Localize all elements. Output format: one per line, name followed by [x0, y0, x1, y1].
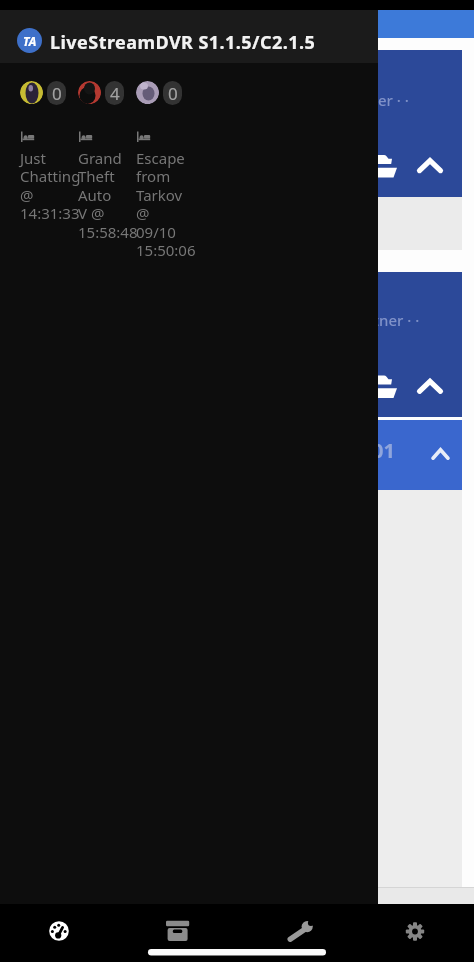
- button[interactable]: [0, 10, 474, 38]
- staticText: Just: [20, 148, 46, 168]
- staticText: Chatting: [20, 166, 81, 186]
- staticText: @: [20, 185, 34, 205]
- staticText: 15:58:48: [78, 222, 138, 242]
- button[interactable]: [10, 272, 462, 417]
- staticText: Auto: [78, 185, 112, 205]
- button[interactable]: [356, 904, 474, 962]
- button[interactable]: [10, 420, 462, 490]
- button[interactable]: [10, 50, 462, 197]
- staticText: Grand: [78, 148, 122, 168]
- staticText: Tarkov: [136, 185, 183, 205]
- staticText: 15:50:06: [136, 240, 196, 260]
- button[interactable]: 0: [47, 81, 66, 105]
- button[interactable]: 0: [163, 81, 182, 105]
- staticText: TA: [23, 33, 37, 49]
- staticText: 4: [110, 82, 120, 105]
- staticText: er · ·: [378, 90, 409, 110]
- staticText: Escape: [136, 148, 185, 168]
- button[interactable]: [136, 81, 159, 104]
- staticText: rtner · ·: [367, 310, 420, 330]
- button[interactable]: TA: [17, 28, 42, 53]
- staticText: 0: [168, 82, 178, 105]
- staticText: LiveStreamDVR S1.1.5/C2.1.5: [50, 30, 316, 55]
- staticText: V @: [78, 203, 105, 223]
- staticText: @: [136, 203, 150, 223]
- staticText: 01: [372, 437, 395, 464]
- button[interactable]: [20, 81, 43, 104]
- button[interactable]: [0, 904, 118, 962]
- button[interactable]: 4: [105, 81, 124, 105]
- button[interactable]: [237, 904, 355, 962]
- staticText: Theft: [78, 166, 115, 186]
- button[interactable]: [119, 904, 237, 962]
- staticText: from: [136, 166, 171, 186]
- staticText: 0: [52, 82, 62, 105]
- button[interactable]: [78, 81, 101, 104]
- staticText: 14:31:33: [20, 203, 80, 223]
- staticText: 09/10: [136, 222, 176, 242]
